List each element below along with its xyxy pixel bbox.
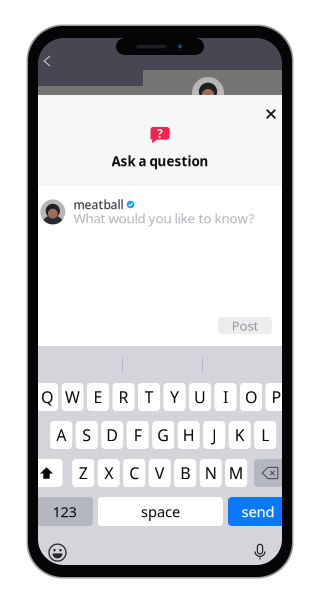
staticText: G — [157, 424, 169, 446]
staticText: I — [223, 386, 228, 408]
staticText: C — [129, 462, 139, 484]
button[interactable]: E — [87, 383, 109, 411]
button[interactable]: G — [152, 421, 174, 449]
button[interactable]: send — [228, 497, 288, 526]
button[interactable]: Back — [44, 56, 50, 66]
staticText: F — [134, 424, 142, 446]
staticText: Z — [79, 462, 88, 484]
button[interactable]: M — [225, 459, 247, 487]
button[interactable]: Q — [36, 383, 58, 411]
button[interactable]: Delete — [254, 459, 286, 487]
staticText: X — [104, 462, 113, 484]
button[interactable]: N — [200, 459, 222, 487]
staticText: send — [241, 502, 274, 521]
staticText: Ask a question — [111, 152, 208, 170]
button[interactable]: Z — [72, 459, 94, 487]
staticText: E — [93, 386, 102, 408]
staticText: T — [144, 386, 153, 408]
button[interactable]: P — [265, 383, 287, 411]
staticText: space — [141, 502, 180, 521]
staticText: W — [65, 386, 80, 408]
button[interactable]: W — [61, 383, 83, 411]
button[interactable]: Close — [267, 110, 275, 118]
button[interactable]: X — [98, 459, 120, 487]
button[interactable]: L — [254, 421, 276, 449]
button[interactable]: U — [189, 383, 211, 411]
staticText: A — [56, 424, 66, 446]
staticText: Post — [231, 317, 258, 334]
staticText: 123 — [52, 502, 76, 521]
button[interactable]: H — [178, 421, 200, 449]
button[interactable]: J — [203, 421, 225, 449]
staticText: H — [183, 424, 195, 446]
button[interactable]: F — [127, 421, 149, 449]
staticText: N — [205, 462, 217, 484]
staticText: Y — [170, 386, 179, 408]
staticText: P — [271, 386, 281, 408]
staticText: V — [155, 462, 165, 484]
staticText: M — [229, 462, 244, 484]
staticText: L — [261, 424, 269, 446]
button[interactable]: K — [229, 421, 251, 449]
button[interactable]: V — [149, 459, 171, 487]
button[interactable]: I — [214, 383, 236, 411]
staticText: O — [245, 386, 257, 408]
button[interactable]: space — [98, 497, 223, 526]
button[interactable]: B — [174, 459, 196, 487]
button[interactable]: Shift — [30, 459, 62, 487]
staticText: What would you like to know? — [74, 209, 255, 227]
button[interactable]: S — [76, 421, 98, 449]
staticText: U — [194, 386, 206, 408]
staticText: K — [235, 424, 245, 446]
staticText: S — [82, 424, 91, 446]
staticText: Q — [41, 386, 53, 408]
button[interactable]: 123 — [36, 497, 93, 526]
staticText: meatball — [74, 196, 124, 212]
button[interactable]: C — [123, 459, 145, 487]
button[interactable]: D — [101, 421, 123, 449]
staticText: R — [118, 386, 128, 408]
staticText: B — [180, 462, 190, 484]
button[interactable]: O — [240, 383, 262, 411]
button[interactable]: Post — [218, 317, 272, 334]
staticText: D — [106, 424, 118, 446]
button[interactable]: A — [50, 421, 72, 449]
button[interactable]: Emoji — [48, 544, 66, 562]
staticText: J — [212, 424, 216, 446]
button[interactable]: T — [138, 383, 160, 411]
button[interactable]: Dictation — [254, 543, 266, 560]
staticText: ? — [157, 125, 163, 141]
button[interactable]: R — [112, 383, 134, 411]
button[interactable]: Y — [163, 383, 185, 411]
